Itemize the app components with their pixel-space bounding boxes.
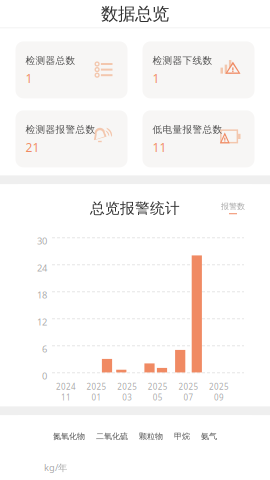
staticText: 21: [25, 139, 39, 155]
staticText: 检测器报警总数: [25, 123, 95, 135]
staticText: 检测器下线数: [152, 54, 212, 66]
button[interactable]: 检测器总数: [15, 41, 127, 98]
staticText: 11: [61, 392, 71, 403]
staticText: 1: [152, 70, 159, 86]
staticText: 低电量报警总数: [152, 123, 222, 135]
staticText: 数据总览: [101, 3, 169, 25]
staticText: 05: [153, 392, 163, 403]
staticText: 0: [42, 370, 47, 382]
button[interactable]: 检测器下线数: [142, 41, 254, 98]
staticText: kg/年: [44, 461, 67, 474]
staticText: 2025: [209, 381, 229, 392]
staticText: 11: [152, 139, 166, 155]
staticText: 总览报警统计: [90, 199, 180, 217]
staticText: 检测器总数: [25, 54, 75, 66]
staticText: 二氧化硫: [96, 431, 128, 441]
staticText: 30: [37, 235, 47, 247]
staticText: 18: [37, 289, 47, 301]
staticText: 2025: [117, 381, 137, 392]
staticText: 09: [214, 392, 224, 403]
staticText: 07: [183, 392, 193, 403]
staticText: 2025: [87, 381, 107, 392]
staticText: 氮氧化物: [53, 431, 85, 441]
staticText: 6: [42, 343, 47, 355]
staticText: 24: [37, 262, 47, 274]
button[interactable]: 检测器报警总数: [15, 110, 127, 167]
button[interactable]: 低电量报警总数: [142, 110, 254, 167]
staticText: 12: [37, 316, 47, 328]
staticText: 颗粒物: [139, 431, 163, 441]
staticText: 报警数: [221, 201, 245, 211]
staticText: 甲烷: [174, 431, 190, 441]
staticText: 2024: [56, 381, 76, 392]
staticText: 01: [92, 392, 102, 403]
staticText: 2025: [178, 381, 198, 392]
staticText: 1: [25, 70, 32, 86]
staticText: 氨气: [201, 431, 217, 441]
staticText: 03: [122, 392, 132, 403]
staticText: 2025: [148, 381, 168, 392]
